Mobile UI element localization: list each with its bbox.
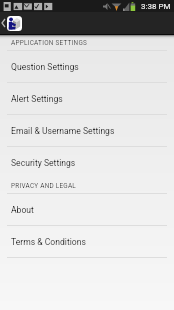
- staticText: PRIVACY AND LEGAL: [11, 182, 77, 190]
- button[interactable]: Email & Username Settings: [0, 115, 174, 147]
- staticText: About: [11, 205, 34, 215]
- staticText: APPLICATION SETTINGS: [11, 39, 88, 47]
- staticText: Email & Username Settings: [11, 126, 115, 136]
- staticText: Security Settings: [11, 158, 76, 168]
- button[interactable]: App icon: [7, 16, 22, 31]
- button[interactable]: Terms & Conditions: [0, 226, 174, 258]
- button[interactable]: About: [0, 194, 174, 226]
- button[interactable]: Security Settings: [0, 147, 174, 178]
- button[interactable]: Question Settings: [0, 51, 174, 83]
- staticText: Question Settings: [11, 62, 79, 72]
- button[interactable]: Back: [0, 12, 7, 34]
- staticText: Terms & Conditions: [11, 237, 86, 247]
- button[interactable]: Alert Settings: [0, 83, 174, 115]
- staticText: 3:38 PM: [141, 2, 171, 11]
- staticText: Alert Settings: [11, 94, 63, 104]
